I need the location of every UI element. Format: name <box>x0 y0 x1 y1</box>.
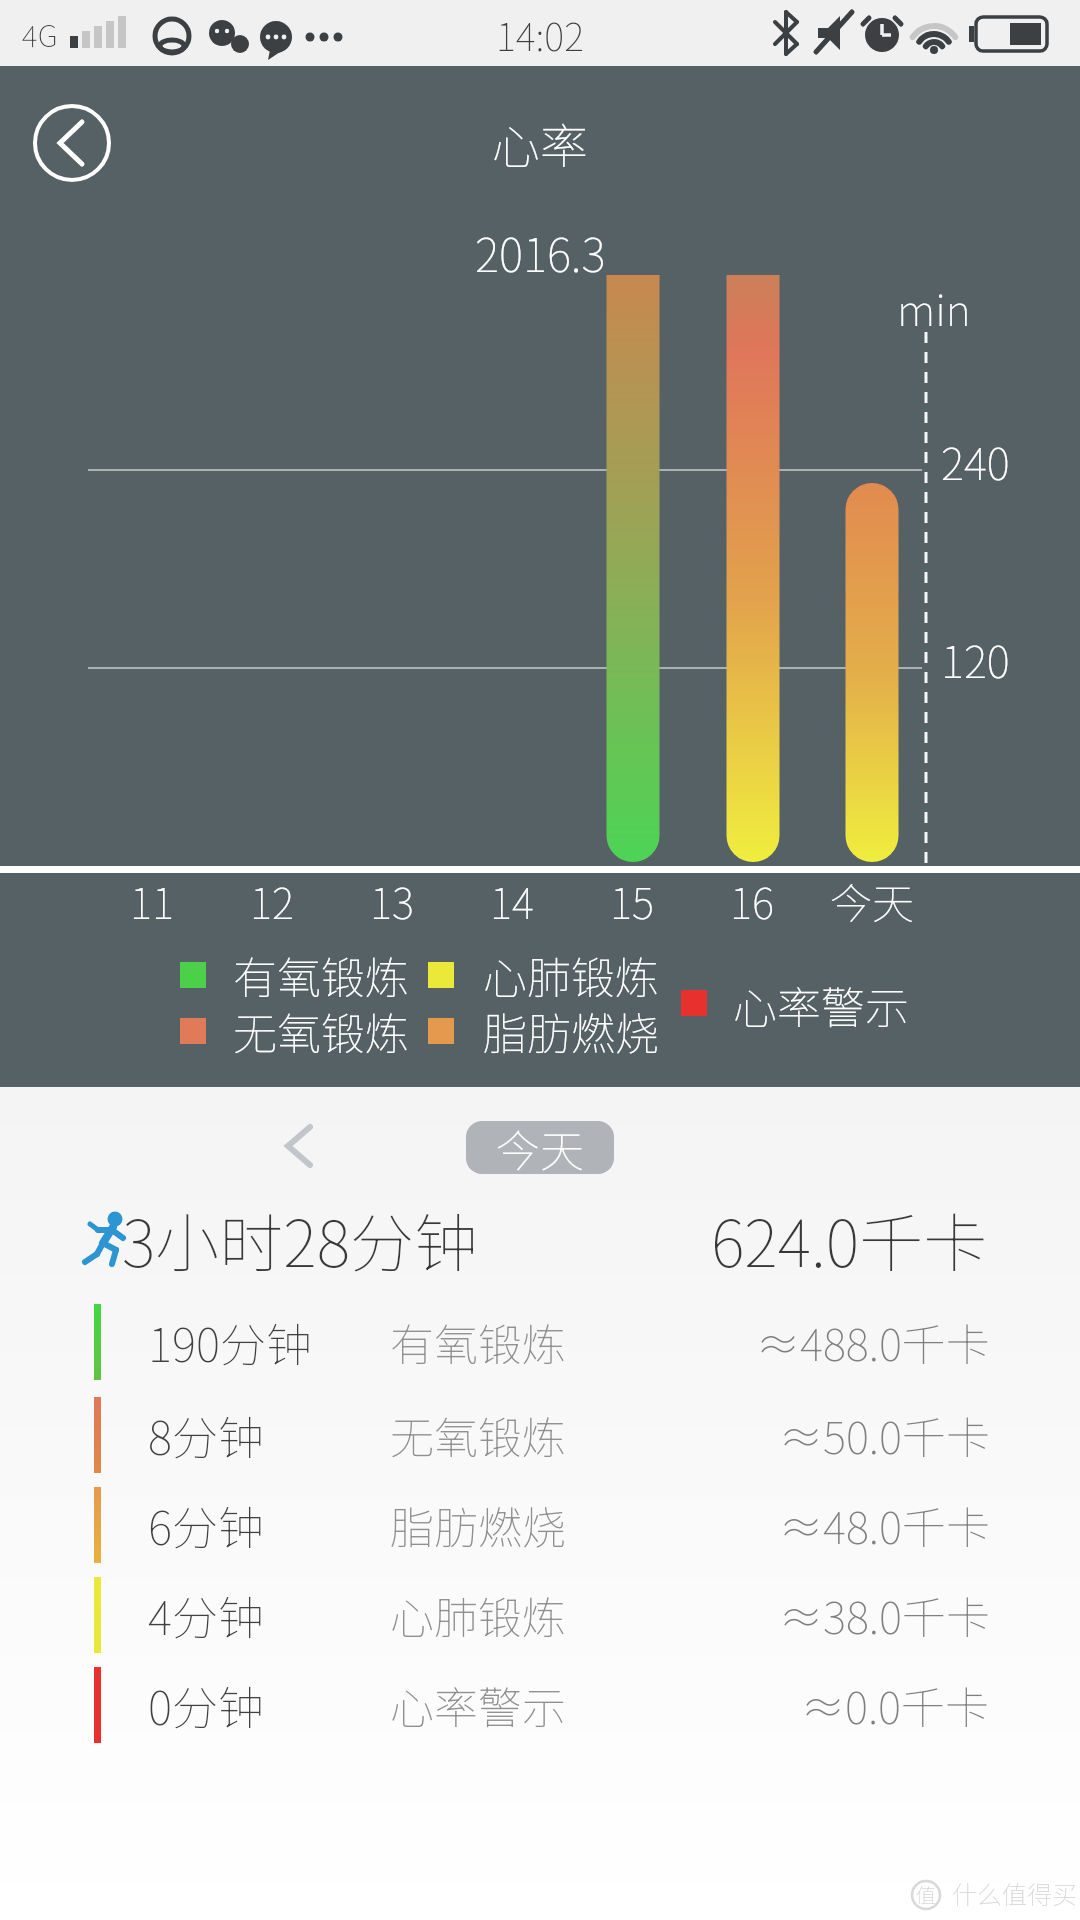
staticText: 有氧锻炼 <box>233 943 409 1007</box>
staticText: min <box>897 276 971 338</box>
staticText: 脂肪燃烧 <box>483 999 659 1063</box>
staticText: 心率警示 <box>733 973 909 1037</box>
staticText: ≈488.0千卡 <box>756 1310 990 1374</box>
staticText: 4G <box>22 12 58 55</box>
staticText: 心率警示 <box>390 1673 566 1737</box>
staticText: 11 <box>130 870 174 931</box>
staticText: 0分钟 <box>148 1672 264 1739</box>
staticText: 14 <box>490 870 534 931</box>
staticText: 190分钟 <box>148 1309 312 1376</box>
staticText: 心肺锻炼 <box>483 943 659 1007</box>
staticText: 240 <box>941 429 1010 493</box>
staticText: 今天 <box>830 870 915 931</box>
staticText: ≈38.0千卡 <box>779 1583 990 1647</box>
staticText: 12 <box>250 870 294 931</box>
staticText: 6分钟 <box>148 1492 264 1559</box>
staticText: 14:02 <box>496 7 584 62</box>
staticText: 15 <box>610 870 654 931</box>
staticText: 120 <box>941 627 1010 691</box>
staticText: ≈48.0千卡 <box>779 1493 990 1557</box>
staticText: 心率 <box>492 108 589 178</box>
staticText: 有氧锻炼 <box>390 1310 566 1374</box>
staticText: 13 <box>370 870 414 931</box>
staticText: 心肺锻炼 <box>390 1583 566 1647</box>
staticText: 值 <box>916 1880 936 1909</box>
staticText: 624.0千卡 <box>711 1193 988 1286</box>
staticText: ≈50.0千卡 <box>779 1403 990 1467</box>
staticText: 脂肪燃烧 <box>390 1493 566 1557</box>
staticText: ≈0.0千卡 <box>801 1673 990 1737</box>
staticText: 3小时28分钟 <box>122 1193 479 1286</box>
staticText: 无氧锻炼 <box>233 999 409 1063</box>
staticText: 8分钟 <box>148 1402 264 1469</box>
staticText: 什么值得买 <box>952 1875 1078 1911</box>
staticText: 无氧锻炼 <box>390 1403 566 1467</box>
staticText: 4分钟 <box>148 1582 264 1649</box>
staticText: 2016.3 <box>475 219 606 286</box>
staticText: 16 <box>730 870 774 931</box>
staticText: 今天 <box>496 1116 584 1180</box>
